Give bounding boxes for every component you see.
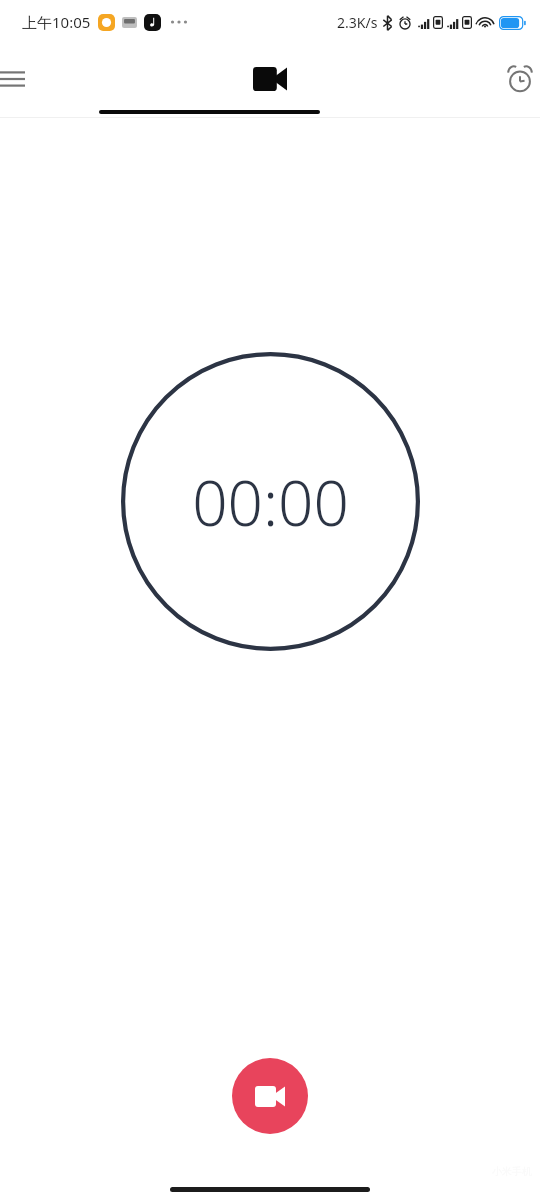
button[interactable]: Menu xyxy=(0,44,180,114)
button[interactable]: 00:00 xyxy=(121,352,420,651)
button[interactable]: Start recording xyxy=(232,1058,308,1134)
button[interactable]: Recorder xyxy=(180,44,360,114)
staticText: 2.3K/s xyxy=(337,13,378,32)
staticText: 上午10:05 xyxy=(22,12,91,32)
button[interactable]: Scheduled xyxy=(360,44,540,114)
staticText: 00:00 xyxy=(192,460,349,544)
